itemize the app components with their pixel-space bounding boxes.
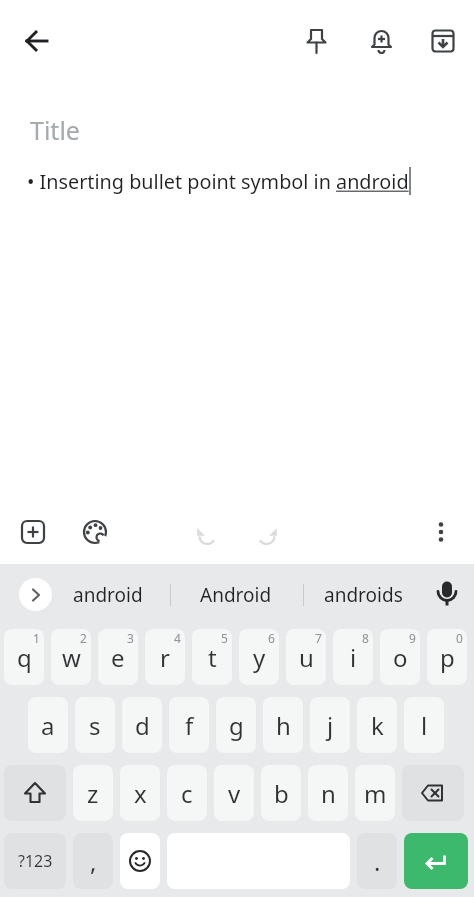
staticText: q xyxy=(17,641,32,674)
button[interactable] xyxy=(246,511,288,553)
staticText: 8 xyxy=(362,630,369,646)
staticText: o xyxy=(393,641,408,674)
staticText: u xyxy=(299,641,314,674)
button[interactable] xyxy=(404,833,468,889)
button[interactable]: y xyxy=(239,629,279,685)
staticText: i xyxy=(350,641,357,674)
staticText: android xyxy=(73,582,143,608)
button[interactable]: androids xyxy=(315,564,411,625)
staticText: 1 xyxy=(33,630,40,646)
button[interactable] xyxy=(4,765,66,821)
staticText: 7 xyxy=(315,630,322,646)
button[interactable]: e xyxy=(98,629,138,685)
staticText: Title xyxy=(30,113,80,147)
button[interactable] xyxy=(12,511,54,553)
staticText: t xyxy=(208,641,217,674)
staticText: p xyxy=(440,641,455,674)
button[interactable]: p xyxy=(427,629,467,685)
button[interactable] xyxy=(427,574,467,614)
button[interactable]: x xyxy=(120,765,160,821)
button[interactable] xyxy=(120,833,160,889)
staticText: Android xyxy=(200,582,272,608)
button[interactable]: w xyxy=(51,629,91,685)
button[interactable] xyxy=(186,511,228,553)
button[interactable] xyxy=(295,20,337,62)
staticText: k xyxy=(371,709,384,742)
button[interactable] xyxy=(420,511,462,553)
staticText: 3 xyxy=(127,630,134,646)
staticText: v xyxy=(228,777,241,810)
button[interactable]: d xyxy=(122,697,162,753)
staticText: , xyxy=(90,845,97,878)
button[interactable]: ?123 xyxy=(4,833,66,889)
button[interactable]: k xyxy=(357,697,397,753)
button[interactable]: Android xyxy=(188,564,284,625)
button[interactable]: m xyxy=(355,765,395,821)
button[interactable]: t xyxy=(192,629,232,685)
button[interactable]: android xyxy=(62,564,154,625)
staticText: 4 xyxy=(174,630,181,646)
button[interactable] xyxy=(16,20,58,62)
staticText: e xyxy=(111,641,125,674)
button[interactable]: b xyxy=(261,765,301,821)
button[interactable]: g xyxy=(216,697,256,753)
button[interactable]: f xyxy=(169,697,209,753)
button[interactable]: v xyxy=(214,765,254,821)
staticText: 0 xyxy=(456,630,463,646)
button[interactable] xyxy=(19,578,52,611)
button[interactable]: n xyxy=(308,765,348,821)
staticText: a xyxy=(41,709,55,742)
button[interactable]: a xyxy=(28,697,68,753)
staticText: 6 xyxy=(268,630,275,646)
staticText: l xyxy=(421,709,428,742)
staticText: c xyxy=(181,777,193,810)
staticText: b xyxy=(274,777,289,810)
button[interactable] xyxy=(422,20,464,62)
staticText: j xyxy=(327,709,334,742)
staticText: y xyxy=(253,641,266,674)
button[interactable]: . xyxy=(357,833,397,889)
button[interactable]: o xyxy=(380,629,420,685)
staticText: z xyxy=(87,777,99,810)
button[interactable] xyxy=(402,765,464,821)
button[interactable]: i xyxy=(333,629,373,685)
staticText: ?123 xyxy=(18,850,53,872)
staticText: . xyxy=(374,845,381,878)
button[interactable]: l xyxy=(404,697,444,753)
staticText: androids xyxy=(324,582,403,608)
staticText: n xyxy=(321,777,336,810)
button[interactable]: r xyxy=(145,629,185,685)
staticText: g xyxy=(229,709,244,742)
staticText: s xyxy=(89,709,101,742)
staticText: h xyxy=(276,709,291,742)
button[interactable]: c xyxy=(167,765,207,821)
staticText: d xyxy=(135,709,150,742)
staticText: 5 xyxy=(221,630,228,646)
button[interactable] xyxy=(74,511,116,553)
button[interactable]: u xyxy=(286,629,326,685)
button[interactable]: s xyxy=(75,697,115,753)
staticText: • Inserting bullet point symbol in andro… xyxy=(27,168,409,195)
staticText: w xyxy=(62,641,81,674)
button[interactable]: q xyxy=(4,629,44,685)
button[interactable]: z xyxy=(73,765,113,821)
staticText: r xyxy=(160,641,170,674)
button[interactable]: h xyxy=(263,697,303,753)
button[interactable] xyxy=(360,20,402,62)
button[interactable]: , xyxy=(73,833,113,889)
button[interactable]: j xyxy=(310,697,350,753)
staticText: x xyxy=(134,777,147,810)
staticText: 9 xyxy=(409,630,416,646)
staticText: m xyxy=(364,777,387,810)
staticText: f xyxy=(185,709,194,742)
staticText: 2 xyxy=(80,630,87,646)
